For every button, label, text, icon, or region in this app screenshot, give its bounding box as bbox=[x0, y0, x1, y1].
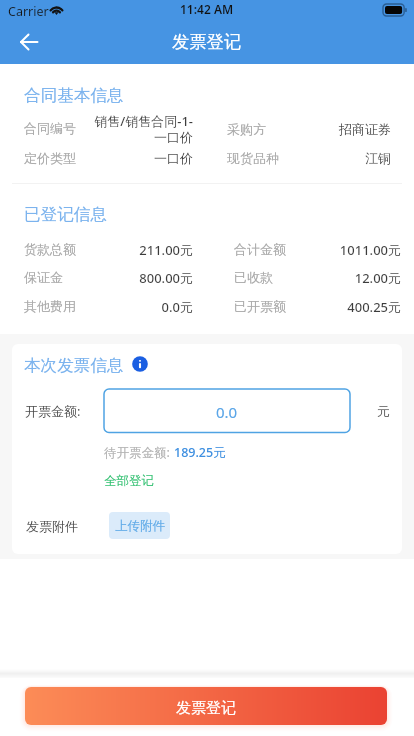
button[interactable]: 上传附件 bbox=[109, 512, 170, 539]
staticText: 211.00元 bbox=[73, 241, 193, 259]
staticText: 销售/销售合同-1-一口价 bbox=[85, 112, 193, 146]
staticText: 合同基本信息 bbox=[24, 85, 124, 106]
staticText: 开票金额: bbox=[25, 402, 81, 420]
button[interactable]: 发票登记 bbox=[25, 687, 387, 725]
staticText: 本次发票信息 bbox=[24, 355, 124, 376]
staticText: 已登记信息 bbox=[24, 204, 107, 225]
staticText: 189.25元 bbox=[174, 444, 226, 461]
staticText: 待开票金额: bbox=[104, 444, 170, 461]
staticText: 0.0元 bbox=[73, 298, 193, 316]
staticText: 货款总额 bbox=[24, 241, 76, 257]
staticText: 合同编号 bbox=[24, 120, 76, 136]
button[interactable]: Back bbox=[8, 20, 50, 64]
staticText: 11:42 AM bbox=[180, 1, 234, 17]
staticText: 400.25元 bbox=[281, 298, 401, 316]
staticText: 1011.00元 bbox=[281, 241, 401, 259]
staticText: 一口价 bbox=[85, 150, 193, 166]
staticText: 发票附件 bbox=[26, 518, 78, 534]
staticText: 上传附件 bbox=[115, 518, 165, 534]
staticText: 全部登记 bbox=[104, 473, 154, 489]
button[interactable]: Information bbox=[132, 356, 148, 372]
staticText: 发票登记 bbox=[176, 699, 236, 718]
staticText: 招商证券 bbox=[271, 121, 391, 137]
staticText: 元 bbox=[377, 403, 390, 419]
staticText: Carrier bbox=[8, 3, 49, 20]
staticText: 800.00元 bbox=[73, 269, 193, 287]
staticText: 现货品种 bbox=[227, 150, 279, 166]
staticText: 合计金额 bbox=[234, 241, 286, 257]
staticText: 12.00元 bbox=[281, 269, 401, 287]
staticText: 已收款 bbox=[234, 269, 273, 285]
staticText: 定价类型 bbox=[24, 150, 76, 166]
staticText: 江铜 bbox=[271, 150, 391, 166]
staticText: 采购方 bbox=[227, 121, 266, 137]
button[interactable]: 全部登记 bbox=[104, 473, 154, 489]
button[interactable]: 0.0 bbox=[104, 389, 350, 434]
staticText: 已开票额 bbox=[234, 298, 286, 314]
staticText: 其他费用 bbox=[24, 298, 76, 314]
staticText: 0.0 bbox=[216, 402, 238, 422]
staticText: 发票登记 bbox=[172, 31, 242, 53]
staticText: 保证金 bbox=[24, 269, 63, 285]
